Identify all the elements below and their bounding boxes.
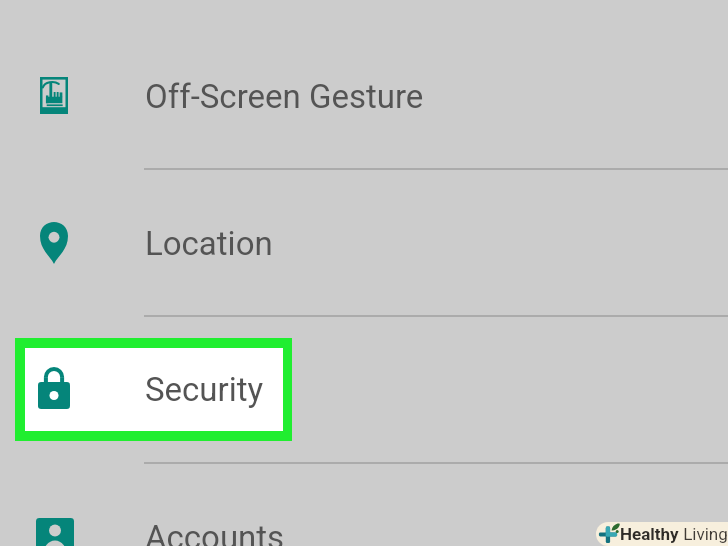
button[interactable]: Accounts [0, 462, 728, 546]
staticText: Living [679, 524, 728, 544]
staticText: Healthy [620, 524, 679, 544]
staticText: Off-Screen Gesture [145, 77, 424, 116]
staticText: Security [145, 371, 264, 410]
button[interactable]: Location [0, 168, 728, 315]
button[interactable]: Security [15, 338, 292, 441]
button[interactable]: Off-Screen Gesture [0, 21, 728, 168]
other: Healthy Living logo [596, 522, 728, 546]
staticText: Location [145, 224, 273, 263]
staticText: Accounts [145, 518, 285, 546]
staticText: Security [145, 370, 264, 409]
button[interactable]: Security [0, 315, 728, 462]
